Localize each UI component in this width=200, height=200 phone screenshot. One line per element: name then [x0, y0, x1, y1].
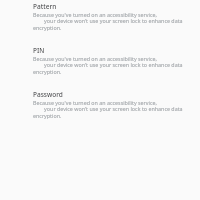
button[interactable]: Pattern — [0, 2, 200, 32]
staticText: Pattern — [33, 2, 57, 11]
button[interactable]: Password — [0, 90, 200, 120]
staticText: PIN — [33, 46, 45, 55]
staticText: Because you've turned on an accessibilit… — [33, 11, 183, 32]
staticText: Because you've turned on an accessibilit… — [33, 55, 183, 76]
button[interactable]: PIN — [0, 46, 200, 76]
staticText: Because you've turned on an accessibilit… — [33, 99, 183, 120]
staticText: Password — [33, 90, 63, 99]
